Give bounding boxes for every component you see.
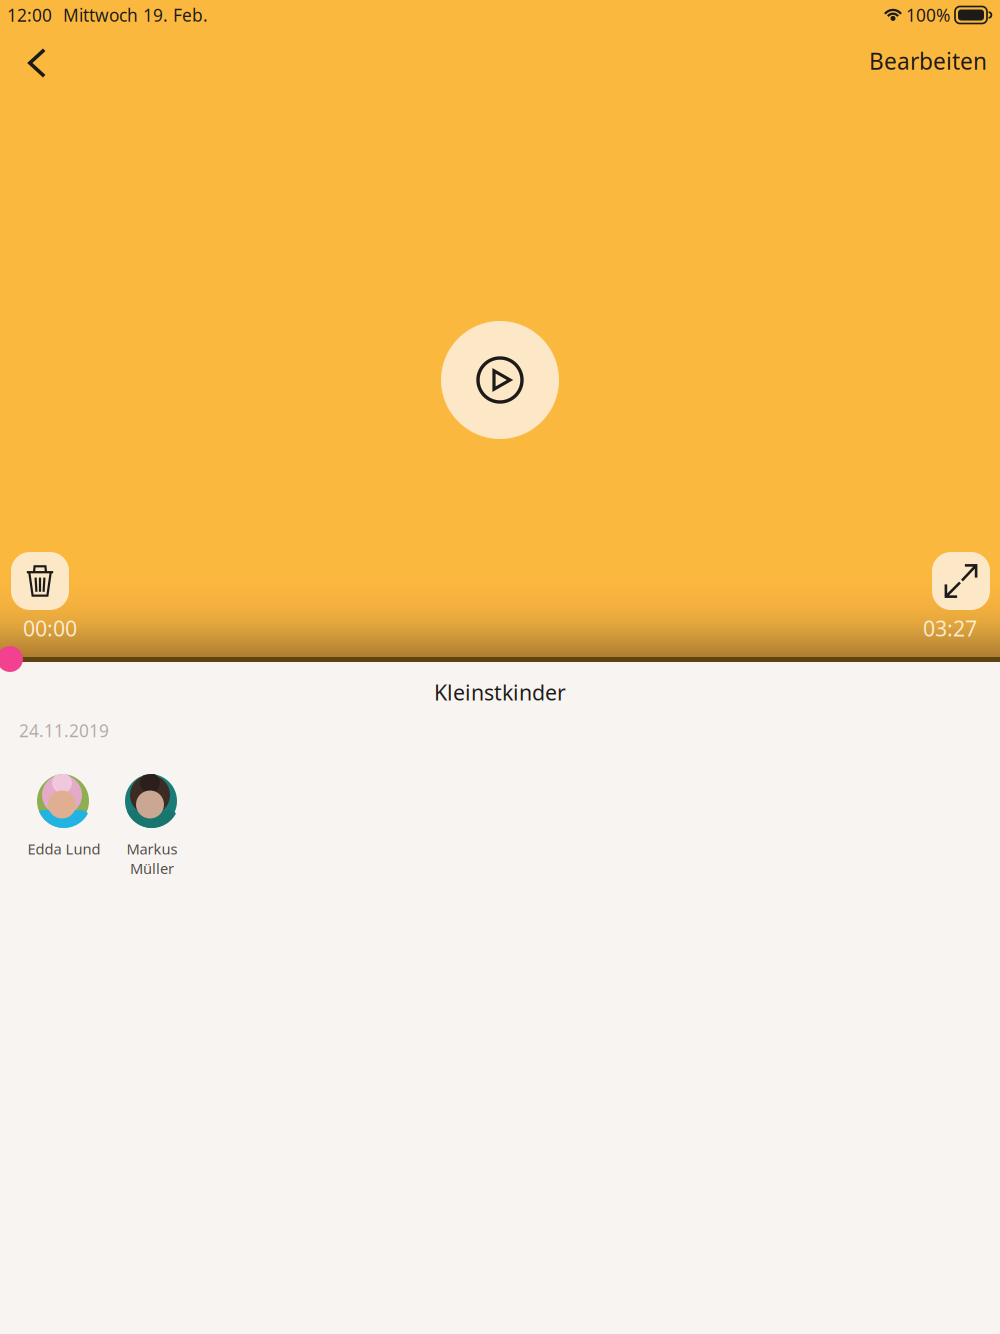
staticText: Bearbeiten xyxy=(869,46,987,76)
button[interactable]: Abspielen xyxy=(441,321,559,439)
button[interactable]: Vollbild xyxy=(932,552,990,610)
staticText: Mittwoch 19. Feb. xyxy=(63,3,208,26)
button[interactable]: Markus xyxy=(108,774,196,878)
button[interactable]: Zurück xyxy=(0,31,71,91)
staticText: 12:00 xyxy=(7,3,52,26)
staticText: Müller xyxy=(130,858,174,878)
staticText: 03:27 xyxy=(923,614,977,642)
button[interactable]: Bearbeiten xyxy=(853,34,1000,88)
staticText: Markus xyxy=(126,839,177,858)
staticText: Edda Lund xyxy=(27,839,100,858)
staticText: 24.11.2019 xyxy=(19,719,109,742)
staticText: Kleinstkinder xyxy=(434,678,566,706)
button[interactable]: Edda Lund xyxy=(20,774,108,858)
staticText: 100% xyxy=(906,3,950,26)
staticText: 00:00 xyxy=(23,614,77,642)
button[interactable]: Löschen xyxy=(11,552,69,610)
